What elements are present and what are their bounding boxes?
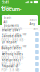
staticText: Contract draft bbox=[2, 34, 22, 38]
staticText: PDF · 5.4 MB · Mar 09 bbox=[2, 44, 27, 52]
staticText: DOCX · 880 KB · Mar 12 bbox=[2, 38, 26, 46]
button[interactable]: Budget sheet bbox=[0, 49, 40, 55]
staticText: Last 30 days bbox=[4, 34, 19, 38]
button[interactable]: Files bbox=[0, 5, 14, 10]
staticText: Proposal v3 bbox=[2, 64, 19, 68]
staticText: Status bbox=[29, 18, 36, 21]
button[interactable]: Receipt 8821 bbox=[0, 61, 40, 67]
staticText: 9:41 bbox=[2, 0, 9, 5]
staticText: PDF · 2.1 MB · Mar 14 bbox=[2, 32, 27, 40]
button[interactable]: Invoice 2041 bbox=[0, 31, 40, 37]
button[interactable]: Proposal v3 bbox=[0, 67, 40, 72]
staticText: Budget sheet bbox=[2, 46, 22, 50]
staticText: Files bbox=[4, 5, 12, 10]
button[interactable]: Q1 Report bbox=[0, 43, 40, 49]
staticText: 24 documents bbox=[2, 27, 22, 30]
staticText: Receipt 8821 bbox=[2, 58, 22, 62]
staticText: DOCX · 310 KB · Mar 02 bbox=[2, 56, 26, 64]
staticText: Documents bbox=[2, 5, 22, 20]
staticText: Search bbox=[4, 16, 12, 20]
staticText: All documents bbox=[4, 20, 19, 27]
staticText: Sort bbox=[33, 27, 38, 30]
staticText: PDF · 640 KB · Feb 27 bbox=[2, 62, 23, 70]
staticText: Date range bbox=[4, 30, 19, 34]
button[interactable]: Meeting notes bbox=[0, 55, 40, 61]
staticText: XLSX · 1.2 MB · Mar 05 bbox=[2, 50, 23, 58]
staticText: Meeting notes bbox=[2, 52, 23, 56]
staticText: Q1 Report bbox=[2, 40, 17, 44]
staticText: PDF · 3.8 MB · Feb 22 bbox=[2, 68, 22, 72]
button[interactable]: Sort bbox=[33, 27, 38, 30]
staticText: Any bbox=[29, 22, 34, 26]
button[interactable]: Contract draft bbox=[0, 37, 40, 43]
staticText: Invoice 2041 bbox=[2, 28, 21, 32]
